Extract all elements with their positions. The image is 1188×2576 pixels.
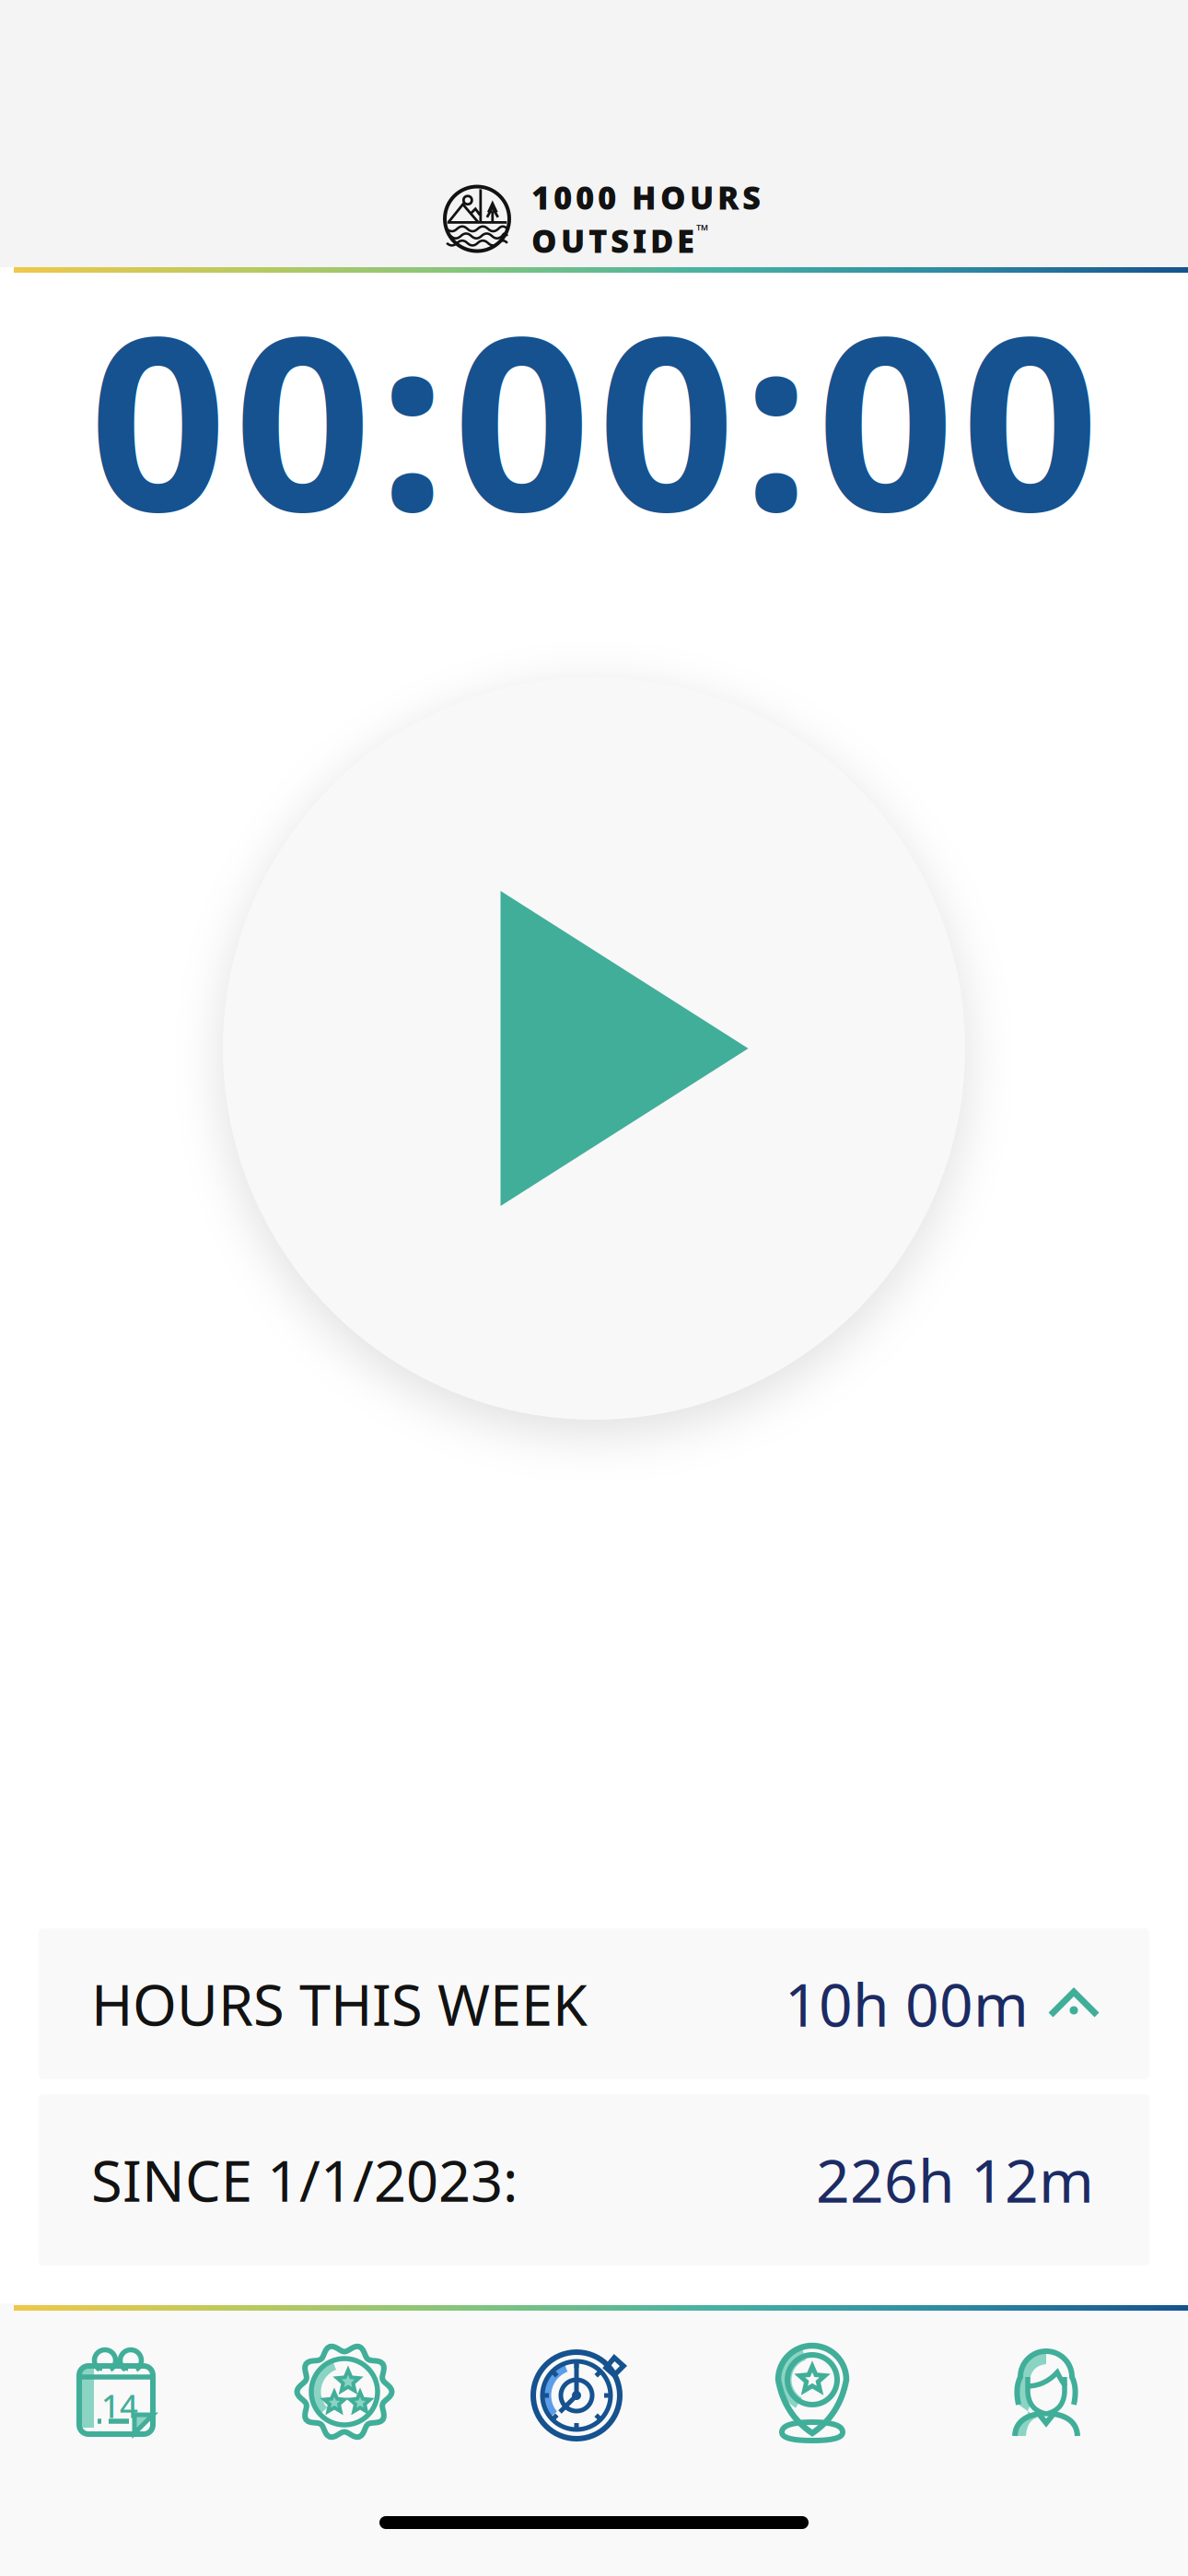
staticText: OUTSIDE bbox=[531, 219, 694, 262]
staticText: ™ bbox=[696, 219, 708, 240]
button[interactable]: SINCE 1/1/2023: bbox=[39, 2094, 1149, 2266]
staticText: HOURS THIS WEEK bbox=[91, 1966, 588, 2041]
button[interactable]: HOURS THIS WEEK bbox=[39, 1928, 1149, 2079]
staticText: 1000 HOURS bbox=[531, 176, 761, 218]
staticText: SINCE 1/1/2023: bbox=[91, 2142, 518, 2217]
staticText: 10h 00m bbox=[785, 1965, 1029, 2043]
button[interactable]: Achievements bbox=[227, 2323, 461, 2461]
staticText: 14 bbox=[101, 2384, 138, 2427]
button[interactable]: Profile bbox=[929, 2323, 1163, 2461]
button[interactable]: Places bbox=[695, 2323, 929, 2461]
button[interactable]: Timer bbox=[461, 2323, 695, 2461]
staticText: 226h 12m bbox=[816, 2141, 1094, 2219]
button[interactable]: Calendar bbox=[5, 2323, 227, 2461]
button[interactable]: Start timer bbox=[223, 677, 965, 1420]
staticText: 00:00:00 bbox=[89, 257, 1099, 577]
